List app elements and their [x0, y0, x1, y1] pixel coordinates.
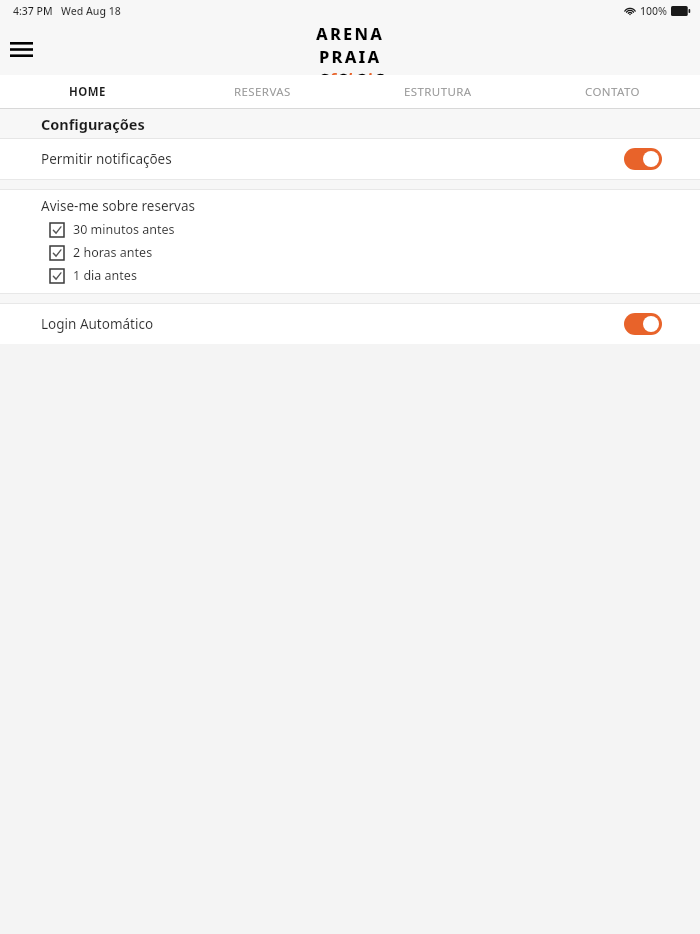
staticText: ESTRUTURA [404, 84, 472, 100]
staticText: CONTATO [585, 84, 640, 100]
button[interactable]: HOME [0, 75, 175, 108]
staticText: 30 minutos antes [73, 221, 175, 238]
button[interactable]: ESTRUTURA [350, 75, 525, 108]
staticText: 4:37 PM [13, 4, 53, 18]
button[interactable]: Menu [4, 32, 38, 66]
staticText: fabri [328, 67, 372, 75]
staticText: Permitir notificações [41, 150, 172, 168]
staticText: ARENA [316, 22, 385, 44]
staticText: Login Automático [41, 315, 154, 333]
staticText: Wed Aug 18 [61, 4, 121, 18]
button[interactable]: CONTATO [525, 75, 700, 108]
staticText: HOME [69, 84, 106, 100]
button[interactable]: Login Automático [0, 304, 700, 344]
staticText: 2 horas antes [73, 244, 153, 261]
staticText: Avise-me sobre reservas [41, 197, 195, 215]
button[interactable]: Toggle [624, 313, 662, 335]
staticText: RESERVAS [234, 84, 291, 100]
button[interactable]: 30 minutos antes [41, 221, 700, 238]
staticText: PRAIA [319, 45, 382, 67]
button[interactable]: RESERVAS [175, 75, 350, 108]
button[interactable]: 1 dia antes [41, 267, 700, 284]
staticText: Configurações [41, 114, 145, 134]
button[interactable]: 2 horas antes [41, 244, 700, 261]
staticText: 100% [640, 4, 667, 18]
button[interactable]: Toggle [624, 148, 662, 170]
staticText: 1 dia antes [73, 267, 137, 284]
button[interactable]: Permitir notificações [0, 139, 700, 179]
